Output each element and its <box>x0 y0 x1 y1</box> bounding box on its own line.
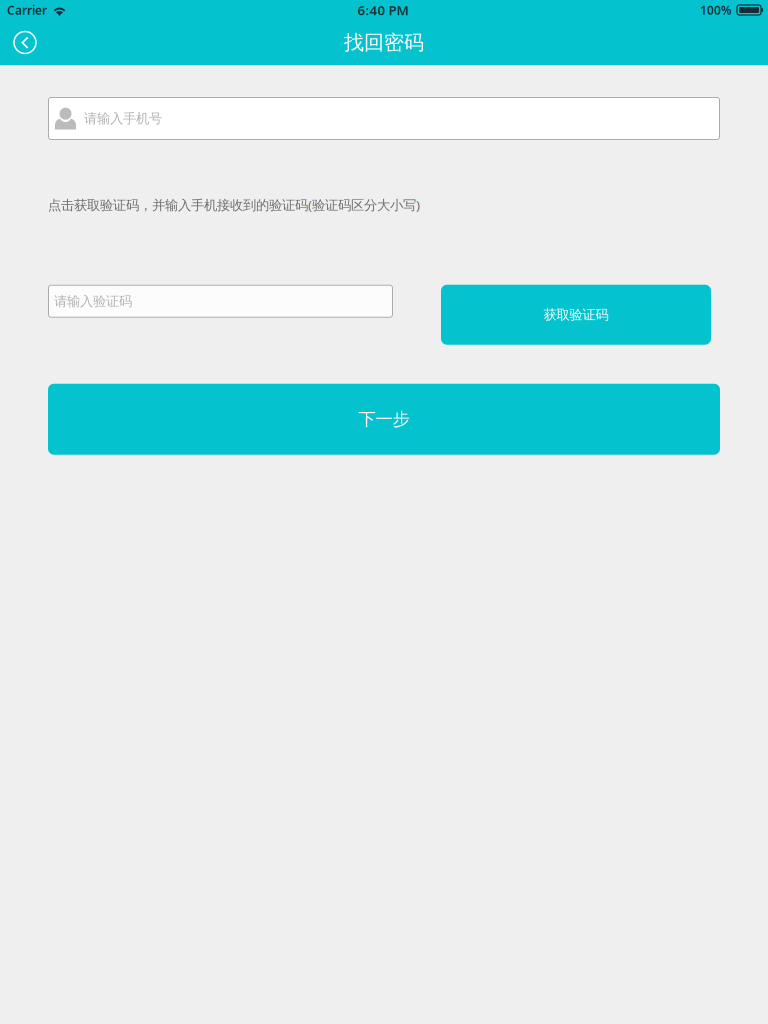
staticText: 获取验证码 <box>543 306 608 323</box>
staticText: 6:40 PM <box>357 1 408 19</box>
staticText: 找回密码 <box>344 30 424 55</box>
staticText: 下一步 <box>358 409 409 430</box>
staticText: 100% <box>700 2 732 18</box>
button[interactable]: 获取验证码 <box>441 285 711 345</box>
staticText: 请输入手机号 <box>84 110 162 127</box>
button[interactable]: 下一步 <box>48 384 720 455</box>
button[interactable]: Back <box>0 21 45 63</box>
staticText: 请输入验证码 <box>54 293 132 309</box>
button[interactable]: 请输入验证码 <box>48 285 393 318</box>
staticText: Carrier <box>7 2 47 18</box>
staticText: 点击获取验证码，并输入手机接收到的验证码(验证码区分大小写) <box>48 196 420 214</box>
button[interactable]: 请输入手机号 <box>48 97 720 140</box>
